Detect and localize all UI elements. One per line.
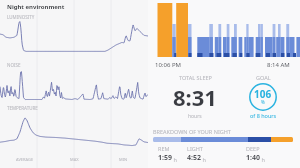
staticText: 8:14 AM: [267, 61, 290, 69]
staticText: 1:59: [158, 153, 172, 163]
staticText: LIGHT: [187, 145, 203, 152]
staticText: 106: [254, 87, 272, 101]
staticText: h: [260, 156, 265, 163]
staticText: BREAKDOWN OF YOUR NIGHT: [153, 128, 231, 135]
staticText: REM: [158, 145, 170, 152]
staticText: TEMPERATURE: [7, 105, 38, 111]
staticText: LUMINOSITY: [7, 14, 35, 20]
staticText: 10:06 PM: [155, 61, 181, 69]
button[interactable]: LIGHT: [187, 145, 206, 163]
staticText: of 8 hours: [250, 112, 277, 119]
button[interactable]: GOAL: [234, 74, 292, 124]
button[interactable]: DEEP: [246, 145, 265, 163]
staticText: Night environment: [7, 3, 65, 11]
staticText: TOTAL SLEEP: [179, 74, 212, 81]
staticText: h: [172, 156, 177, 163]
staticText: DEEP: [246, 145, 260, 152]
staticText: hours: [188, 113, 202, 120]
staticText: h: [201, 156, 206, 163]
staticText: GOAL: [256, 74, 271, 81]
staticText: 8:31: [173, 82, 217, 112]
staticText: MIN: [119, 157, 128, 162]
staticText: 4:52: [187, 153, 201, 163]
button[interactable]: TOTAL SLEEP: [162, 74, 228, 124]
staticText: %: [261, 99, 265, 105]
staticText: AVERAGE: [16, 157, 34, 162]
button[interactable]: REM: [158, 145, 177, 163]
staticText: NOISE: [7, 62, 21, 68]
staticText: 1:40: [246, 153, 260, 163]
staticText: MAX: [70, 157, 79, 162]
